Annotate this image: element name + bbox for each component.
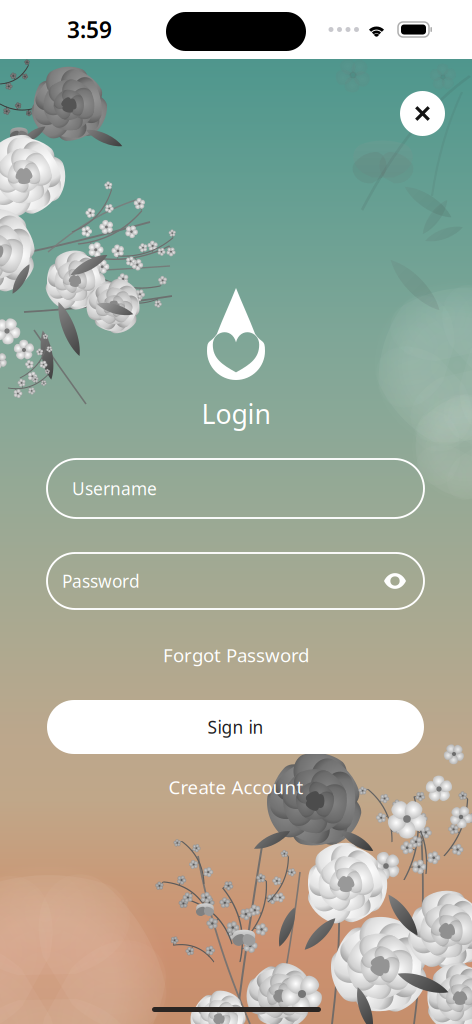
button[interactable]: Show password — [374, 560, 416, 602]
staticText: 3:59 — [67, 14, 112, 44]
button[interactable]: Sign in — [47, 700, 424, 754]
staticText: Password — [62, 569, 140, 592]
button[interactable]: Forgot Password — [0, 638, 472, 672]
staticText: Create Account — [168, 775, 303, 799]
button[interactable]: Close — [400, 91, 445, 136]
button[interactable]: Create Account — [0, 770, 472, 804]
staticText: Login — [201, 396, 270, 431]
staticText: Forgot Password — [163, 643, 309, 667]
staticText: Sign in — [207, 715, 263, 738]
staticText: Username — [72, 477, 157, 500]
